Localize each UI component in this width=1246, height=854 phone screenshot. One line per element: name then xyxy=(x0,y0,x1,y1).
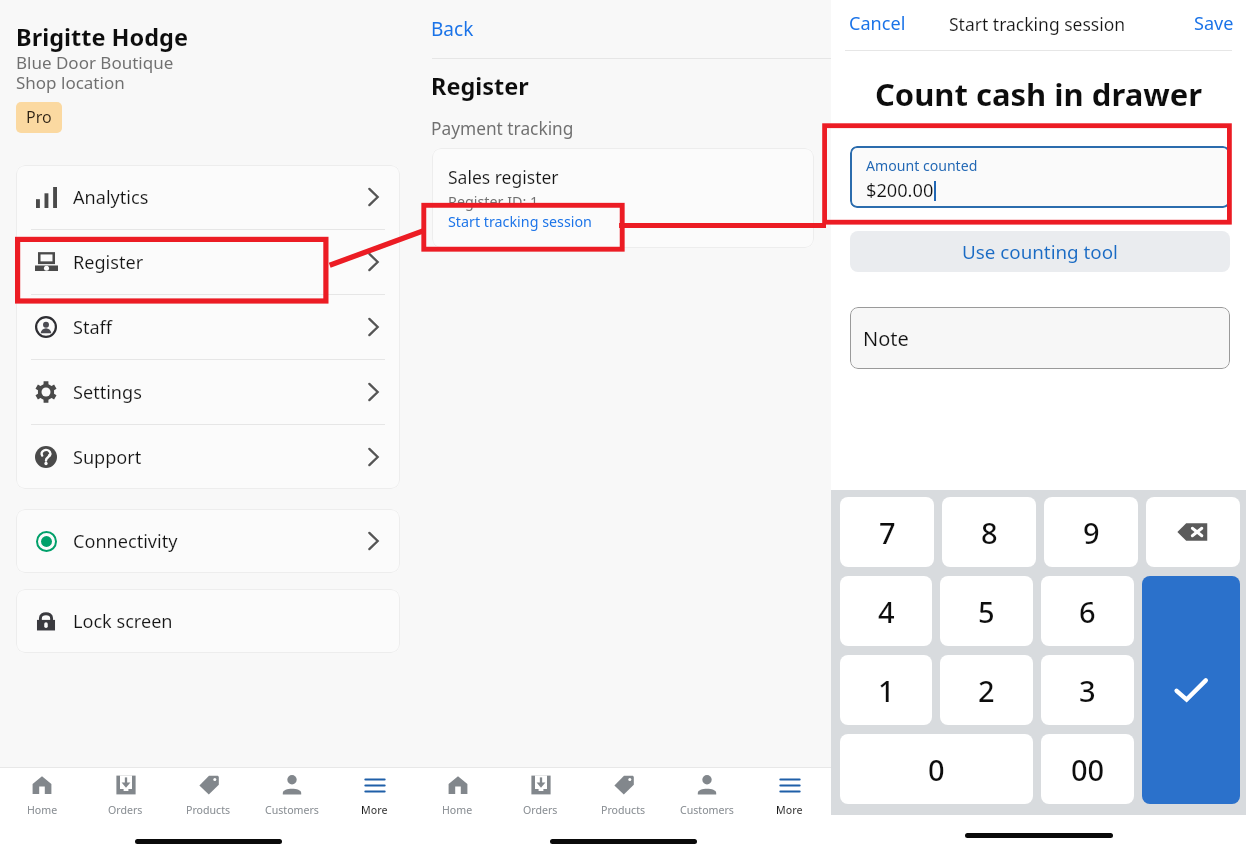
button[interactable]: Staff xyxy=(16,295,400,359)
staticText: Customers xyxy=(680,803,734,817)
staticText: Pro xyxy=(26,106,52,128)
staticText: Brigitte Hodge xyxy=(16,21,188,53)
button[interactable]: Backspace xyxy=(1146,497,1240,567)
button[interactable]: Settings xyxy=(16,360,400,424)
button[interactable]: 5 xyxy=(940,576,1033,646)
button[interactable]: 0 xyxy=(840,734,1033,804)
button[interactable]: 00 xyxy=(1041,734,1134,804)
staticText: Amount counted xyxy=(866,156,978,175)
staticText: Home xyxy=(27,803,58,817)
staticText: 4 xyxy=(878,592,895,631)
staticText: 00 xyxy=(1071,750,1105,789)
button[interactable]: Lock screen xyxy=(16,589,400,653)
staticText: Customers xyxy=(265,803,319,817)
button[interactable]: 2 xyxy=(940,655,1033,725)
staticText: 9 xyxy=(1083,513,1100,552)
button[interactable]: 3 xyxy=(1041,655,1134,725)
staticText: 7 xyxy=(879,513,896,552)
staticText: Shop location xyxy=(16,71,125,94)
staticText: More xyxy=(361,803,388,817)
staticText: Start tracking session xyxy=(448,212,592,231)
button[interactable]: Save xyxy=(1194,11,1234,36)
button[interactable]: Orders xyxy=(84,768,167,824)
button[interactable]: Cancel xyxy=(849,11,906,36)
staticText: Payment tracking xyxy=(431,117,574,141)
staticText: Support xyxy=(73,445,142,470)
button[interactable]: 6 xyxy=(1041,576,1134,646)
staticText: Lock screen xyxy=(73,609,173,634)
button[interactable]: Home xyxy=(0,768,84,824)
button[interactable]: Products xyxy=(167,768,250,824)
staticText: More xyxy=(776,803,803,817)
staticText: 2 xyxy=(978,671,995,710)
staticText: 8 xyxy=(981,513,998,552)
staticText: Products xyxy=(186,803,231,817)
staticText: Register ID: 1 xyxy=(448,192,539,211)
staticText: $200.00 xyxy=(866,178,934,203)
button[interactable]: More xyxy=(333,768,416,824)
staticText: Connectivity xyxy=(73,529,178,554)
button[interactable]: Confirm xyxy=(1142,576,1240,804)
button[interactable]: Analytics xyxy=(16,165,400,229)
button[interactable]: Connectivity xyxy=(16,509,400,573)
staticText: 6 xyxy=(1079,592,1096,631)
button[interactable]: Note xyxy=(850,307,1230,369)
staticText: Note xyxy=(863,325,909,352)
staticText: Orders xyxy=(523,803,558,817)
button[interactable]: Home xyxy=(416,768,499,824)
staticText: 3 xyxy=(1079,671,1096,710)
staticText: Blue Door Boutique xyxy=(16,51,174,74)
button[interactable]: 9 xyxy=(1044,497,1138,567)
button[interactable]: Use counting tool xyxy=(850,231,1230,272)
staticText: Start tracking session xyxy=(949,12,1126,36)
staticText: Staff xyxy=(73,315,113,340)
button[interactable]: Start tracking session xyxy=(448,212,592,231)
button[interactable]: 4 xyxy=(840,576,932,646)
staticText: 0 xyxy=(928,750,945,789)
button[interactable]: Customers xyxy=(665,768,748,824)
button[interactable]: Customers xyxy=(250,768,333,824)
staticText: 1 xyxy=(878,671,895,710)
button[interactable]: 1 xyxy=(840,655,932,725)
staticText: Home xyxy=(442,803,473,817)
staticText: Cancel xyxy=(849,11,906,36)
staticText: Register xyxy=(431,70,529,102)
staticText: Count cash in drawer xyxy=(831,73,1246,115)
staticText: Use counting tool xyxy=(962,239,1118,265)
staticText: 5 xyxy=(978,592,995,631)
button[interactable]: Products xyxy=(582,768,665,824)
button[interactable]: Back xyxy=(431,16,474,42)
staticText: Back xyxy=(431,16,474,42)
button[interactable]: 7 xyxy=(840,497,934,567)
button[interactable]: More xyxy=(748,768,831,824)
button[interactable]: Orders xyxy=(499,768,582,824)
staticText: Save xyxy=(1194,11,1234,36)
button[interactable]: Support xyxy=(16,425,400,489)
staticText: Register xyxy=(73,250,144,275)
staticText: Analytics xyxy=(73,185,149,210)
staticText: Orders xyxy=(108,803,143,817)
button[interactable]: 8 xyxy=(942,497,1036,567)
button[interactable]: Register xyxy=(16,230,400,294)
staticText: Products xyxy=(601,803,646,817)
staticText: Sales register xyxy=(448,165,559,189)
staticText: Settings xyxy=(73,380,142,405)
